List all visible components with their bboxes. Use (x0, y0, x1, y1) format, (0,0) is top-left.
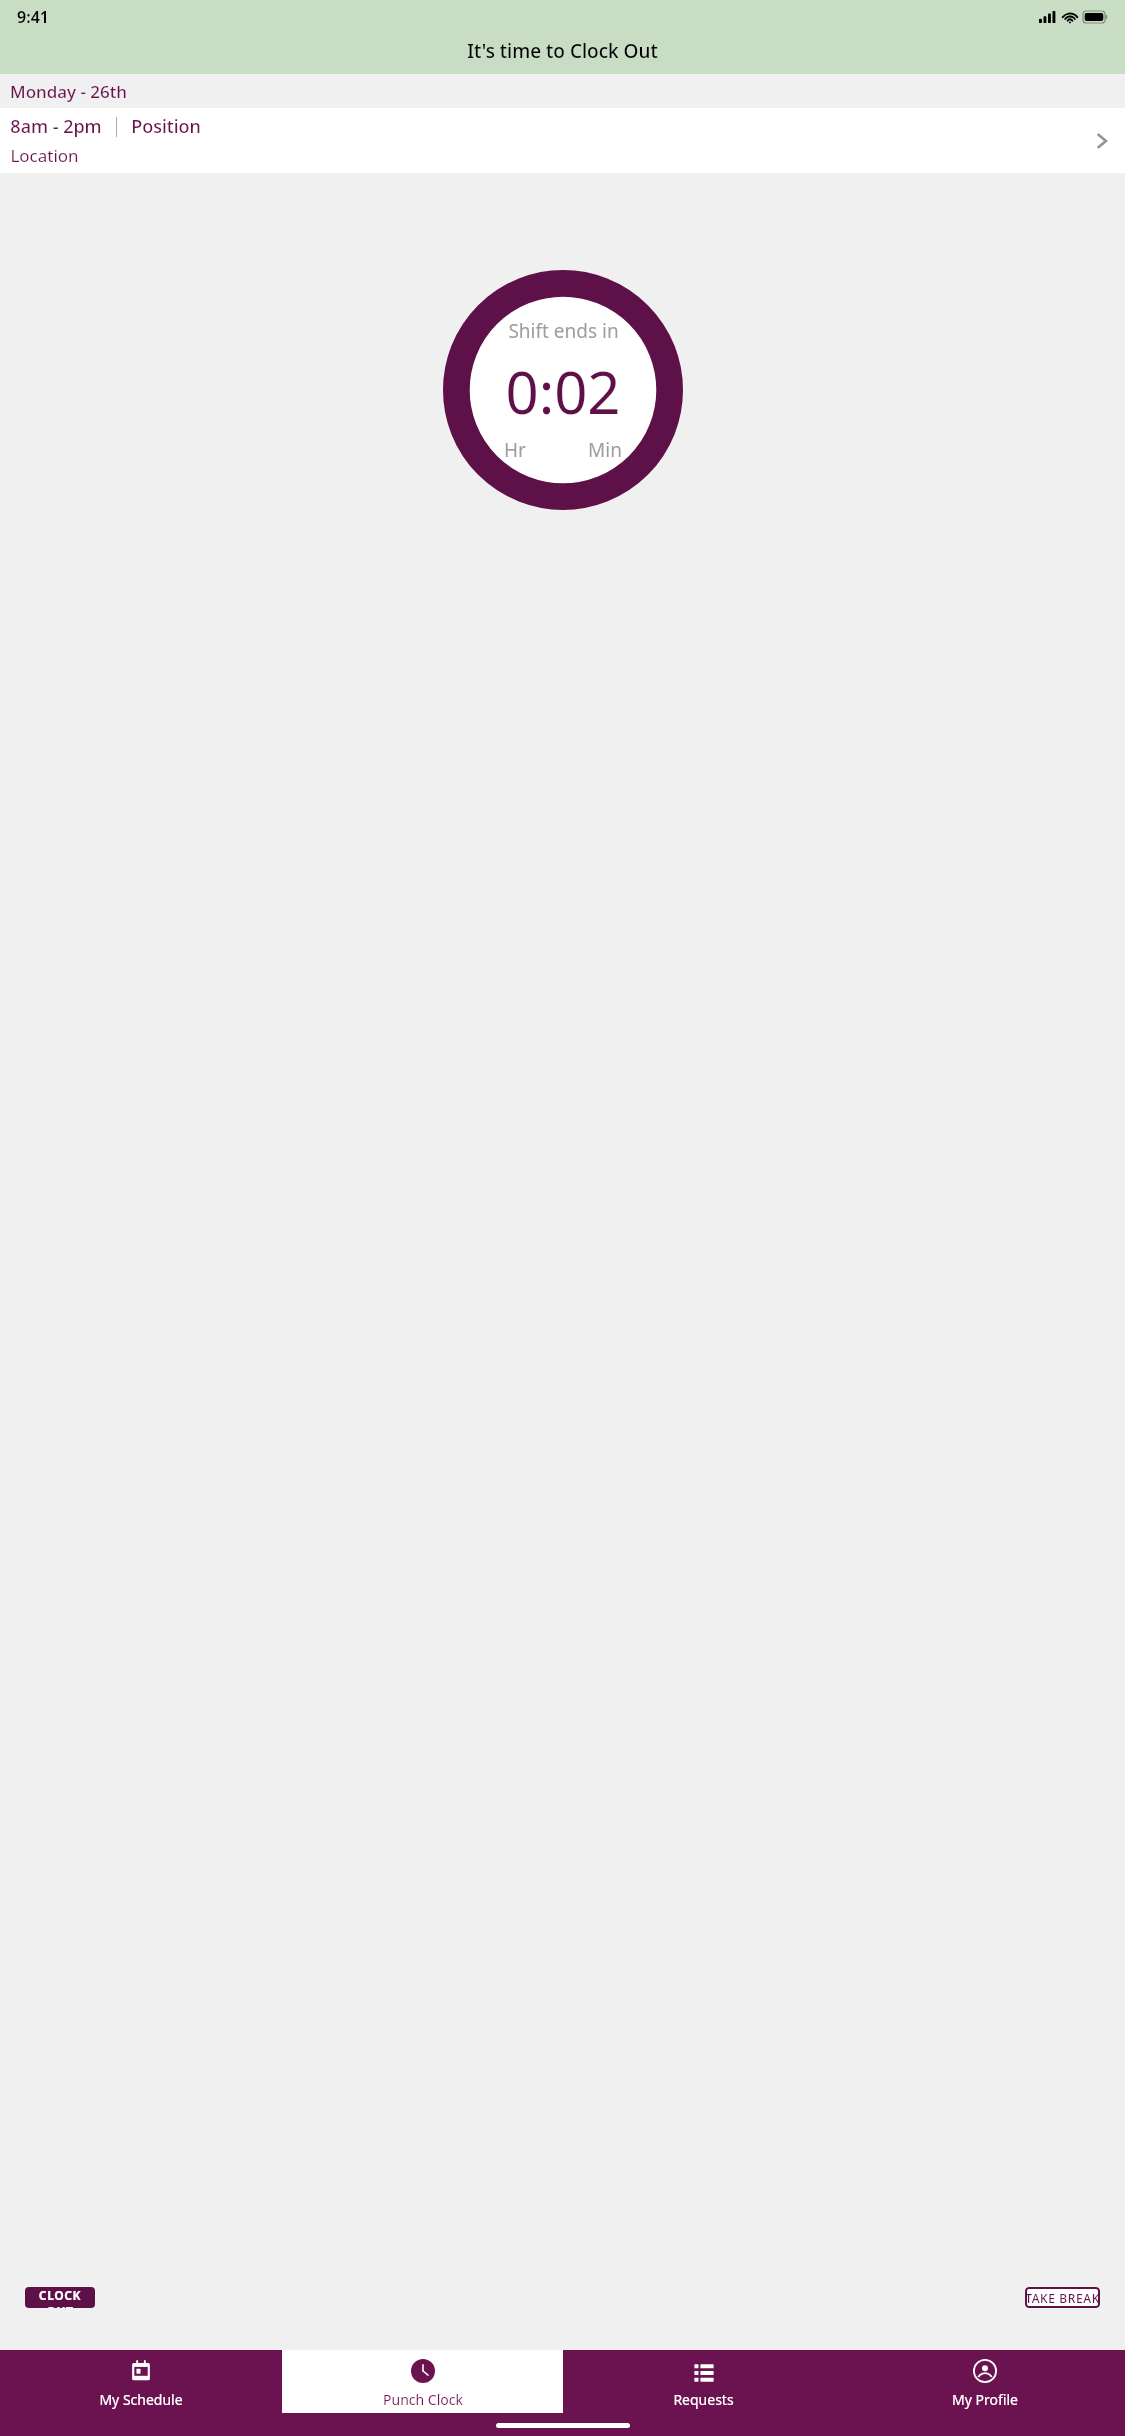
button[interactable]: Punch Clock (282, 2350, 563, 2413)
button[interactable]: My Profile (844, 2350, 1125, 2413)
staticText: Position (131, 114, 201, 139)
staticText: TAKE BREAK (1025, 2290, 1100, 2306)
staticText: Location (10, 144, 79, 167)
staticText: It's time to Clock Out (467, 38, 658, 64)
staticText: My Profile (952, 2390, 1018, 2409)
staticText: 8am - 2pm (10, 114, 102, 139)
button[interactable]: TAKE BREAK (1025, 2287, 1100, 2308)
button[interactable]: My Schedule (0, 2350, 282, 2413)
staticText: 9:41 (17, 6, 49, 28)
staticText: My Schedule (99, 2390, 183, 2409)
button[interactable]: CLOCK OUT (25, 2287, 95, 2308)
staticText: Monday - 26th (10, 80, 127, 103)
button[interactable]: 8am - 2pm (0, 108, 1125, 173)
staticText: CLOCK OUT (25, 2287, 95, 2308)
staticText: Shift ends in (508, 318, 619, 344)
staticText: Hr (504, 437, 526, 463)
staticText: Min (588, 437, 622, 463)
staticText: 0:02 (505, 352, 621, 431)
button[interactable]: Requests (563, 2350, 844, 2413)
staticText: Punch Clock (383, 2390, 463, 2409)
staticText: Requests (673, 2390, 734, 2409)
